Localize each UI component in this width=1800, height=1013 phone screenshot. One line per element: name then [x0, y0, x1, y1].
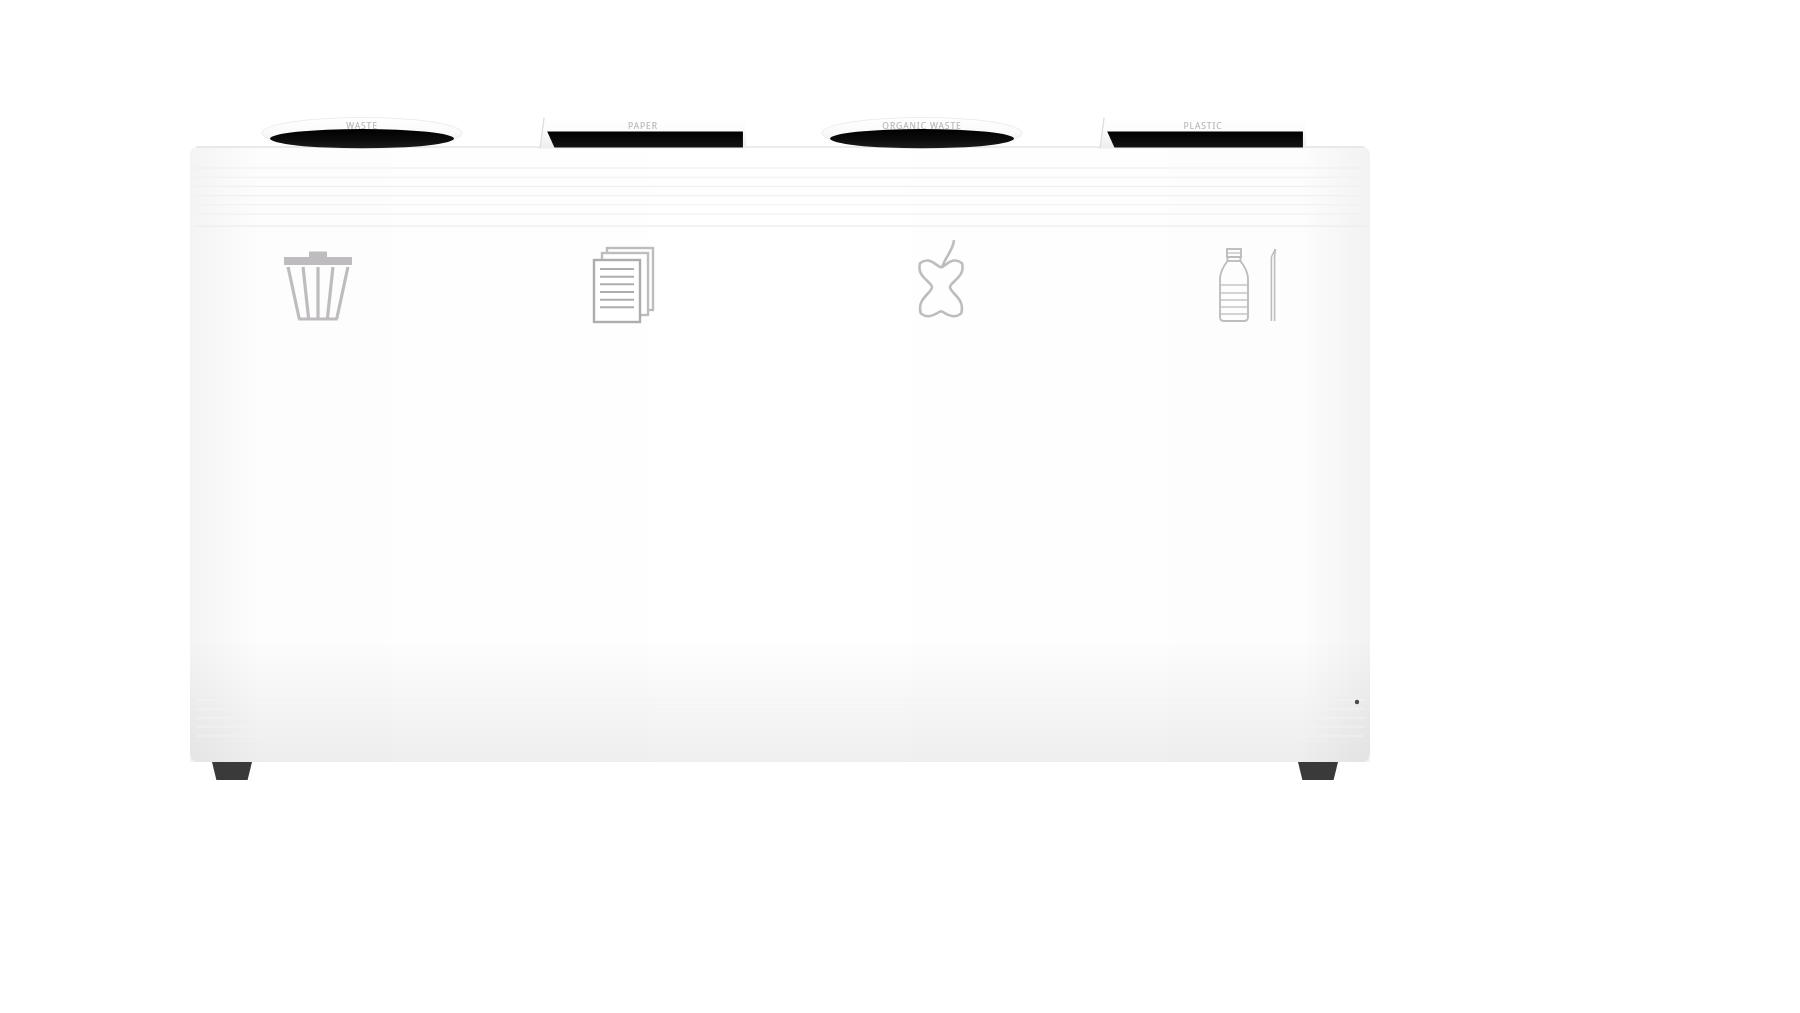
button[interactable]: Recycling station with four waste openin… — [0, 0, 1800, 1013]
